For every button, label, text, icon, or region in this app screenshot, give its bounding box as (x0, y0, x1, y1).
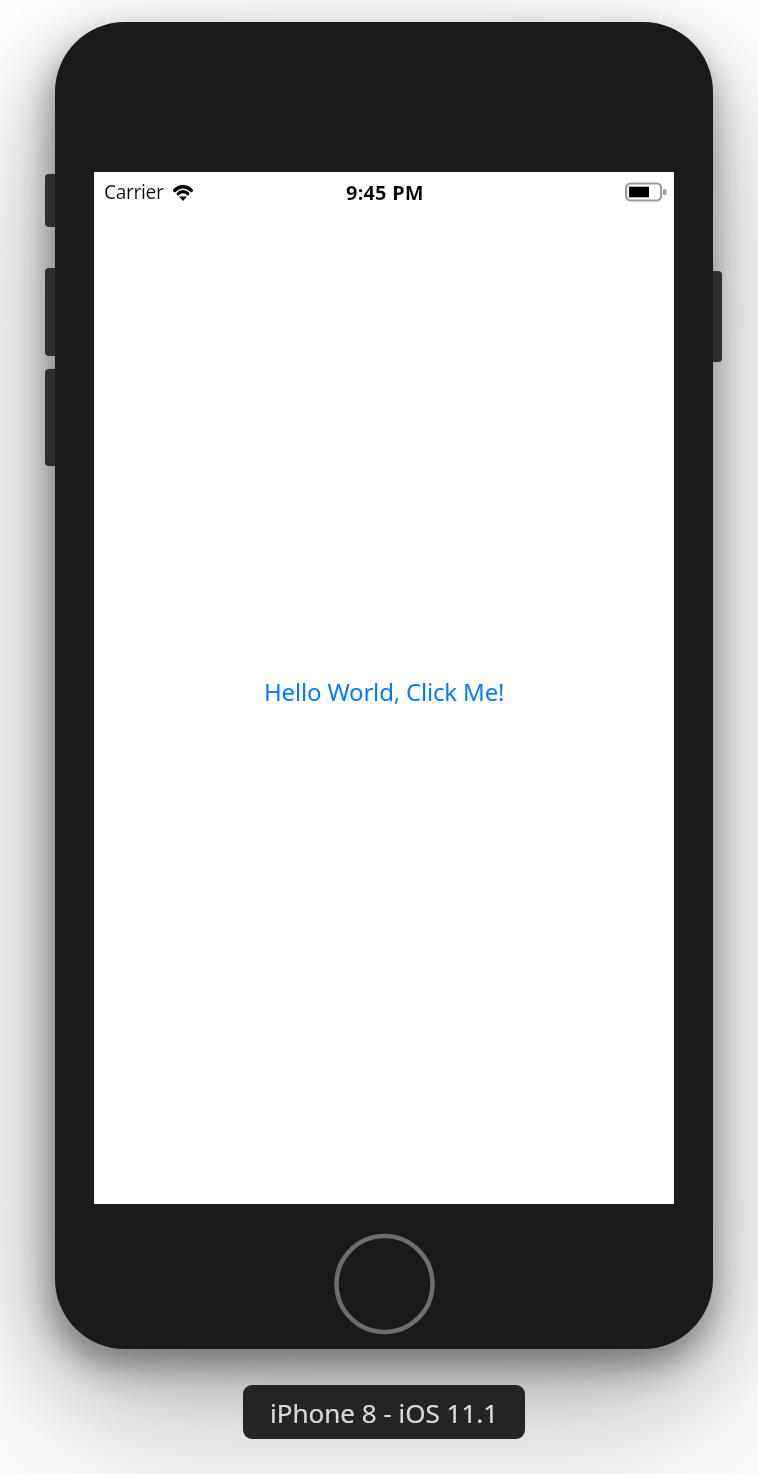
other: Wi-Fi signal strength (171, 181, 195, 201)
other: Battery level (625, 182, 667, 202)
staticText: Hello World, Click Me! (264, 675, 505, 708)
staticText: iPhone 8 - iOS 11.1 (270, 1395, 499, 1430)
button[interactable]: Hello World, Click Me! (264, 675, 505, 708)
staticText: 9:45 PM (346, 179, 424, 206)
button[interactable]: iPhone 8 - iOS 11.1 (243, 1385, 525, 1439)
staticText: Carrier (104, 179, 164, 205)
